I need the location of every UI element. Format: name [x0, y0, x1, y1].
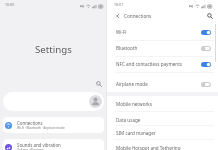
staticText: Bluetooth — [116, 45, 138, 51]
staticText: Mobile networks — [116, 101, 152, 107]
staticText: 10:01 — [114, 2, 124, 7]
button[interactable]: Mobile Hotspot and Tethering — [107, 140, 218, 150]
button[interactable]: SIM card manager — [107, 125, 218, 140]
staticText: Data usage — [116, 117, 141, 123]
button[interactable] — [3, 92, 104, 111]
staticText: 10:00 — [5, 2, 15, 7]
button[interactable]: Search — [94, 79, 103, 88]
staticText: Wi-Fi · Bluetooth · Airplane mode — [17, 126, 65, 130]
staticText: Mobile Hotspot and Tethering — [116, 145, 181, 150]
button[interactable]: Mobile networks — [107, 96, 218, 111]
staticText: Volume · Ringtone — [17, 148, 44, 150]
button[interactable]: Bluetooth — [107, 40, 218, 56]
button[interactable]: Back — [112, 10, 123, 21]
staticText: Wi-Fi — [116, 29, 127, 35]
button[interactable]: Wi-Fi — [107, 24, 218, 40]
button[interactable]: Connections — [3, 117, 104, 133]
staticText: Connections — [124, 13, 152, 19]
staticText: Sounds and vibration — [17, 142, 61, 148]
staticText: SIM card manager — [116, 130, 156, 136]
button[interactable]: Sounds and vibration — [3, 139, 104, 150]
button[interactable]: Search — [204, 10, 215, 21]
staticText: NFC and contactless payments — [116, 61, 183, 67]
staticText: Airplane mode — [116, 81, 148, 87]
button[interactable]: Data usage — [107, 112, 218, 127]
staticText: Settings — [35, 43, 72, 56]
button[interactable]: Airplane mode — [107, 76, 218, 92]
button[interactable]: NFC and contactless payments — [107, 56, 218, 72]
staticText: Connections — [17, 120, 43, 126]
